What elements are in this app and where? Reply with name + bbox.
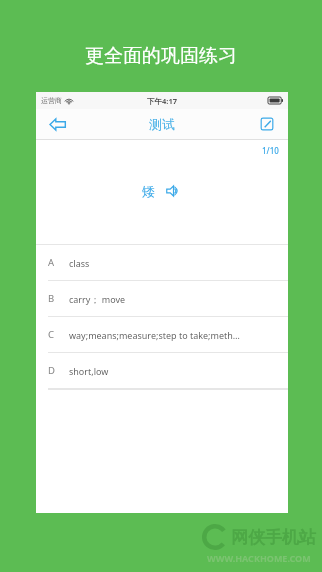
staticText: A: [48, 256, 55, 269]
staticText: 运营商: [41, 96, 62, 105]
staticText: way;means;measure;step to take;meth…: [69, 329, 240, 341]
button[interactable]: A: [36, 245, 288, 280]
staticText: 网侠手机站: [231, 527, 316, 548]
staticText: 更全面的巩固练习: [85, 44, 237, 68]
staticText: WWW.HACKHOME.COM: [207, 552, 311, 564]
staticText: 下午4:17: [147, 96, 177, 106]
button[interactable]: D: [36, 353, 288, 388]
staticText: carry； move: [69, 293, 126, 305]
staticText: 矮: [142, 183, 155, 199]
staticText: 1/10: [262, 145, 279, 156]
button[interactable]: Play pronunciation: [164, 182, 182, 200]
staticText: B: [48, 292, 55, 305]
staticText: C: [48, 328, 55, 341]
button[interactable]: Back: [42, 109, 72, 139]
button[interactable]: Edit: [252, 109, 282, 139]
staticText: short,low: [69, 365, 109, 377]
button[interactable]: B: [36, 281, 288, 316]
staticText: class: [69, 257, 90, 269]
button[interactable]: C: [36, 317, 288, 352]
staticText: D: [48, 364, 55, 377]
staticText: 测试: [149, 116, 175, 132]
